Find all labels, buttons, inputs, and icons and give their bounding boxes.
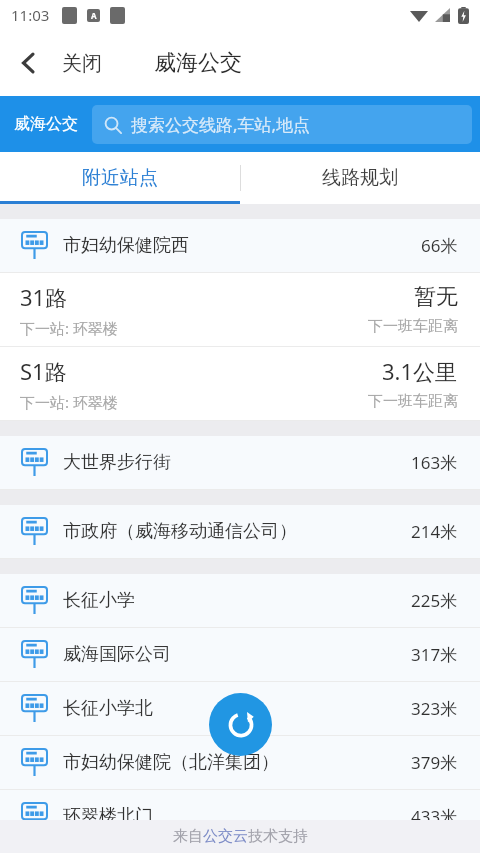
staticText: 市政府（威海移动通信公司） bbox=[63, 520, 297, 543]
button[interactable]: 市妇幼保健院西 bbox=[0, 219, 480, 273]
staticText: 下一班车距离 bbox=[368, 317, 458, 336]
button[interactable]: 31路 bbox=[0, 273, 480, 347]
button[interactable]: 关闭 bbox=[54, 43, 110, 84]
staticText: 线路规划 bbox=[322, 166, 398, 190]
staticText: 66米 bbox=[421, 234, 458, 257]
staticText: 214米 bbox=[411, 520, 458, 543]
staticText: 323米 bbox=[411, 697, 458, 720]
staticText: 大世界步行街 bbox=[63, 451, 171, 474]
staticText: 379米 bbox=[411, 751, 458, 774]
button[interactable]: 线路规划 bbox=[240, 152, 480, 204]
staticText: 下一站: 环翠楼 bbox=[20, 392, 118, 412]
staticText: 433米 bbox=[411, 805, 458, 828]
staticText: 长征小学北 bbox=[63, 697, 153, 720]
staticText: 3.1公里 bbox=[382, 356, 458, 386]
staticText: 附近站点 bbox=[82, 166, 158, 190]
staticText: 下一站: 环翠楼 bbox=[20, 318, 118, 338]
staticText: 来自公交云技术支持 bbox=[173, 827, 308, 846]
button[interactable]: 长征小学北 bbox=[0, 682, 480, 736]
staticText: 11:03 bbox=[11, 5, 50, 25]
staticText: 市妇幼保健院西 bbox=[63, 234, 189, 257]
button[interactable]: 市妇幼保健院（北洋集团） bbox=[0, 736, 480, 790]
button[interactable]: 市政府（威海移动通信公司） bbox=[0, 505, 480, 559]
staticText: 163米 bbox=[411, 451, 458, 474]
button[interactable]: Back bbox=[6, 40, 52, 86]
staticText: A bbox=[91, 10, 97, 21]
staticText: 长征小学 bbox=[63, 589, 135, 612]
staticText: S1路 bbox=[20, 356, 67, 386]
staticText: 威海国际公司 bbox=[63, 643, 171, 666]
staticText: 威海公交 bbox=[14, 114, 78, 134]
button[interactable]: 搜索公交线路,车站,地点 bbox=[92, 105, 472, 144]
staticText: 317米 bbox=[411, 643, 458, 666]
staticText: 市妇幼保健院（北洋集团） bbox=[63, 751, 279, 774]
staticText: 下一班车距离 bbox=[368, 392, 458, 411]
button[interactable]: 大世界步行街 bbox=[0, 436, 480, 490]
button[interactable]: 威海公交 bbox=[10, 108, 82, 140]
button[interactable]: 附近站点 bbox=[0, 152, 240, 204]
staticText: 暂无 bbox=[414, 283, 458, 311]
staticText: 搜索公交线路,车站,地点 bbox=[131, 113, 311, 136]
button[interactable]: S1路 bbox=[0, 347, 480, 421]
staticText: 关闭 bbox=[62, 51, 102, 76]
button[interactable]: 长征小学 bbox=[0, 574, 480, 628]
button[interactable]: 环翠楼北门 bbox=[0, 790, 480, 844]
staticText: 威海公交 bbox=[154, 49, 242, 77]
staticText: 环翠楼北门 bbox=[63, 805, 153, 828]
staticText: 225米 bbox=[411, 589, 458, 612]
staticText: 31路 bbox=[20, 282, 68, 312]
button[interactable]: 威海国际公司 bbox=[0, 628, 480, 682]
button[interactable]: Refresh bbox=[209, 693, 272, 756]
